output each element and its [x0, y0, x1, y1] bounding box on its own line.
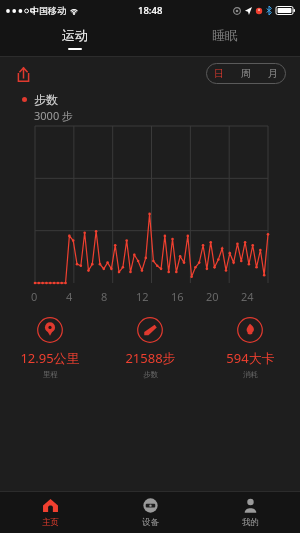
staticText: 594大卡	[226, 349, 275, 367]
button[interactable]: Share	[10, 61, 36, 87]
button[interactable]: 周	[232, 63, 259, 84]
button[interactable]: 12.95公里	[0, 317, 100, 379]
button[interactable]: 我的	[200, 492, 300, 533]
staticText: 12	[136, 289, 149, 304]
button[interactable]: 21588步	[100, 317, 200, 379]
staticText: 步数	[143, 370, 158, 379]
staticText: 主页	[42, 517, 59, 528]
staticText: 日	[214, 67, 224, 80]
staticText: 运动	[62, 27, 88, 43]
staticText: 18:48	[138, 4, 163, 17]
button[interactable]: 月	[259, 63, 286, 84]
staticText: 16	[171, 289, 184, 304]
button[interactable]: 主页	[0, 492, 100, 533]
staticText: 3000 步	[34, 108, 74, 123]
staticText: 0	[31, 289, 38, 304]
staticText: 睡眠	[212, 27, 238, 43]
staticText: 步数	[34, 92, 58, 107]
staticText: 20	[206, 289, 219, 304]
staticText: 周	[241, 67, 251, 80]
staticText: 我的	[242, 517, 259, 528]
button[interactable]: 日	[206, 63, 232, 84]
staticText: 中国移动	[30, 5, 66, 16]
button[interactable]: 594大卡	[200, 317, 300, 379]
button[interactable]: 设备	[100, 492, 200, 533]
staticText: 12.95公里	[20, 349, 80, 367]
button[interactable]: 睡眠	[150, 20, 300, 57]
staticText: 设备	[142, 517, 159, 528]
staticText: 21588步	[125, 349, 176, 367]
staticText: 里程	[43, 370, 58, 379]
staticText: 月	[268, 67, 278, 80]
staticText: 消耗	[243, 370, 258, 379]
button[interactable]: 运动	[0, 20, 150, 57]
staticText: 4	[66, 289, 73, 304]
staticText: 24	[241, 289, 254, 304]
staticText: 8	[101, 289, 108, 304]
